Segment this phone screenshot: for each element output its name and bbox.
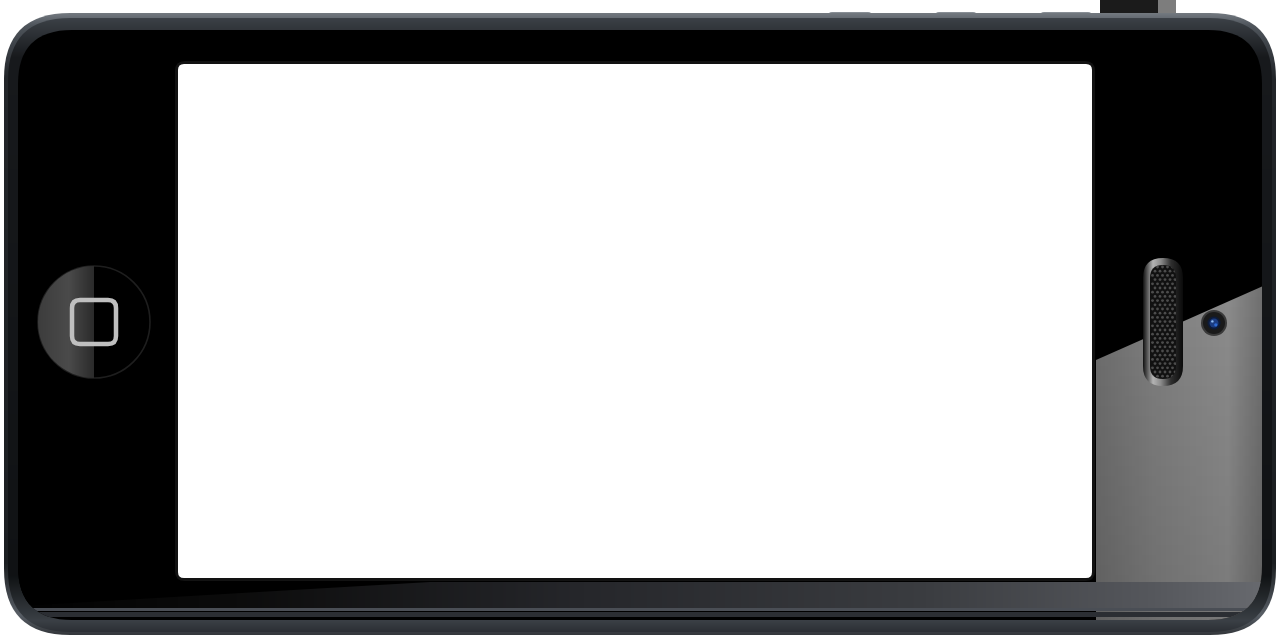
button[interactable]: Smartphone device mockup — [0, 0, 1280, 640]
